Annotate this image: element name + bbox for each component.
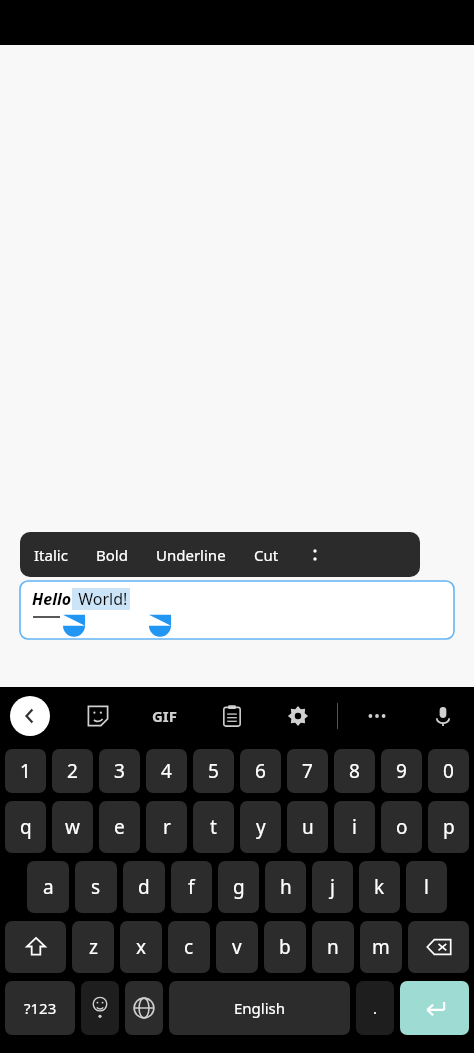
button[interactable]: s [75,861,117,913]
button[interactable]: c [168,921,210,973]
button[interactable]: Enter [400,981,469,1035]
staticText: r [163,814,171,840]
staticText: Italic [34,545,68,565]
button[interactable]: More [360,699,394,733]
staticText: h [280,874,292,900]
button[interactable]: 9 [381,749,422,793]
button[interactable]: Language [125,981,163,1035]
button[interactable]: Italic [20,532,82,577]
staticText: 9 [396,758,407,784]
button[interactable]: 8 [334,749,375,793]
staticText: v [232,934,242,960]
button[interactable]: 6 [240,749,281,793]
button[interactable]: h [265,861,306,913]
staticText: k [374,874,385,900]
staticText: 7 [302,758,313,784]
button[interactable]: y [240,801,281,853]
button[interactable]: w [52,801,93,853]
button[interactable]: t [193,801,234,853]
button[interactable]: e [99,801,140,853]
button[interactable]: k [359,861,400,913]
button[interactable]: Backspace [408,921,469,973]
staticText: c [184,934,194,960]
button[interactable]: 5 [193,749,234,793]
button[interactable]: a [27,861,69,913]
button[interactable]: Cut [240,532,293,577]
button[interactable]: 2 [52,749,93,793]
button[interactable]: j [312,861,353,913]
staticText: o [396,814,408,840]
button[interactable]: More options [293,532,337,577]
button[interactable]: 3 [99,749,140,793]
staticText: e [114,814,125,840]
button[interactable]: . [356,981,394,1035]
staticText: t [210,814,217,840]
button[interactable]: v [216,921,258,973]
staticText: 3 [114,758,125,784]
staticText: g [233,874,245,900]
button[interactable]: u [287,801,328,853]
button[interactable]: English [169,981,350,1035]
staticText: x [136,934,147,960]
staticText: Underline [156,545,226,565]
button[interactable]: f [171,861,212,913]
button[interactable]: m [360,921,402,973]
button[interactable]: Voice input [426,699,460,733]
staticText: GIF [152,706,177,726]
staticText: 2 [67,758,78,784]
staticText: 4 [161,758,172,784]
button[interactable]: l [406,861,447,913]
button[interactable]: q [5,801,46,853]
staticText: f [188,874,195,900]
button[interactable]: Bold [82,532,142,577]
button[interactable]: ?123 [5,981,75,1035]
staticText: j [330,874,335,900]
button[interactable]: 7 [287,749,328,793]
staticText: q [20,814,32,840]
staticText: 6 [255,758,266,784]
staticText: y [256,814,266,840]
staticText: u [302,814,314,840]
button[interactable]: Settings [281,699,315,733]
button[interactable]: g [218,861,259,913]
button[interactable]: o [381,801,422,853]
button[interactable]: Hello [20,581,454,639]
staticText: d [138,874,150,900]
staticText: 8 [349,758,360,784]
button[interactable]: Underline [142,532,240,577]
staticText: i [352,814,357,840]
staticText: p [443,814,455,840]
staticText: . [373,998,378,1018]
button[interactable]: b [264,921,306,973]
staticText: z [89,934,98,960]
button[interactable]: Back [10,696,50,736]
staticText: 5 [208,758,219,784]
staticText: l [424,874,429,900]
staticText: n [327,934,339,960]
button[interactable]: Shift [5,921,66,973]
button[interactable]: r [146,801,187,853]
staticText: Hello [32,588,72,610]
staticText: 1 [20,758,31,784]
staticText: ?123 [24,998,57,1018]
staticText: b [279,934,291,960]
button[interactable]: Clipboard [215,699,249,733]
staticText: a [43,874,54,900]
button[interactable]: 1 [5,749,46,793]
button[interactable]: p [428,801,469,853]
staticText: World! [74,588,128,610]
button[interactable]: 0 [428,749,469,793]
button[interactable]: GIF [146,700,183,732]
staticText: w [65,814,80,840]
staticText: 0 [443,758,454,784]
button[interactable]: x [120,921,162,973]
button[interactable]: Emoji [81,981,119,1035]
button[interactable]: n [312,921,354,973]
button[interactable]: 4 [146,749,187,793]
staticText: English [234,998,286,1018]
button[interactable]: d [123,861,165,913]
button[interactable]: i [334,801,375,853]
staticText: m [372,934,390,960]
button[interactable]: z [72,921,114,973]
button[interactable]: Stickers [81,699,115,733]
